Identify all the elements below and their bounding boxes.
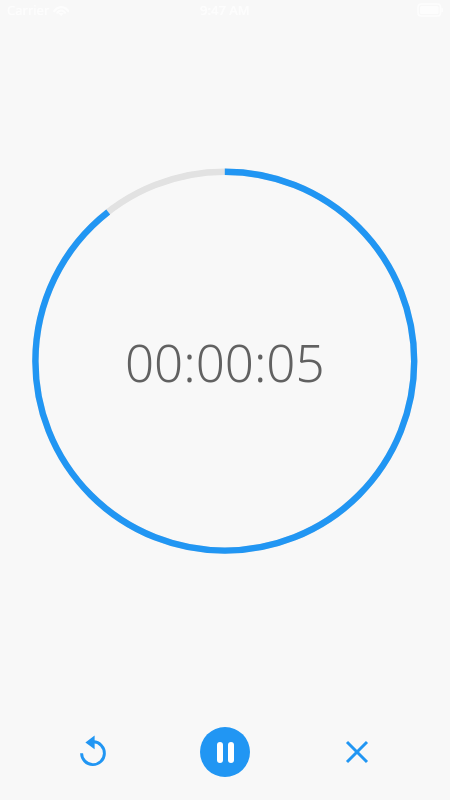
staticText: 00:00:05 [125,327,325,396]
button[interactable]: Close [333,728,381,776]
button[interactable]: Pause [200,727,250,777]
button[interactable]: Restart [69,728,117,776]
